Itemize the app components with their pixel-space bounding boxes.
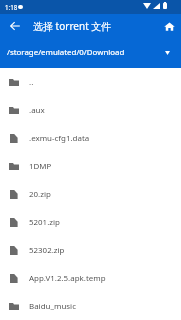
staticText: 52302.zip xyxy=(29,245,65,256)
button[interactable]: Baidu_music xyxy=(0,292,181,320)
button[interactable]: App.V1.2.5.apk.temp xyxy=(0,264,181,292)
staticText: .. xyxy=(29,77,34,88)
button[interactable]: 52302.zip xyxy=(0,236,181,264)
staticText: 20.zip xyxy=(29,189,51,200)
button[interactable]: .. xyxy=(0,68,181,96)
button[interactable]: 1DMP xyxy=(0,152,181,180)
button[interactable]: Back xyxy=(3,14,27,38)
staticText: App.V1.2.5.apk.temp xyxy=(29,273,106,284)
staticText: .aux xyxy=(29,105,45,116)
button[interactable]: Home xyxy=(157,14,181,38)
staticText: Baidu_music xyxy=(29,301,76,312)
button[interactable]: 5201.zip xyxy=(0,208,181,236)
staticText: 选择 torrent 文件 xyxy=(33,19,112,33)
staticText: 1DMP xyxy=(29,161,52,172)
staticText: /storage/emulated/0/Download xyxy=(7,47,125,58)
button[interactable]: .aux xyxy=(0,96,181,124)
staticText: .exmu-cfg1.data xyxy=(29,133,90,144)
button[interactable]: 20.zip xyxy=(0,180,181,208)
staticText: 1:18 xyxy=(5,3,18,11)
staticText: 5201.zip xyxy=(29,217,60,228)
button[interactable]: /storage/emulated/0/Download xyxy=(0,38,181,68)
button[interactable]: .exmu-cfg1.data xyxy=(0,124,181,152)
